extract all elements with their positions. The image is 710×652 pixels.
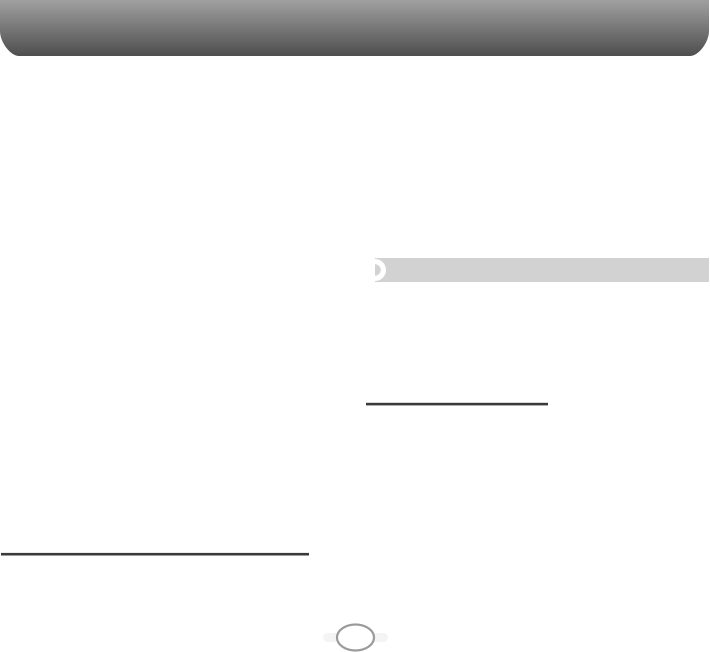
button[interactable]: Progress [375,258,709,282]
button[interactable]: Home [337,624,374,650]
